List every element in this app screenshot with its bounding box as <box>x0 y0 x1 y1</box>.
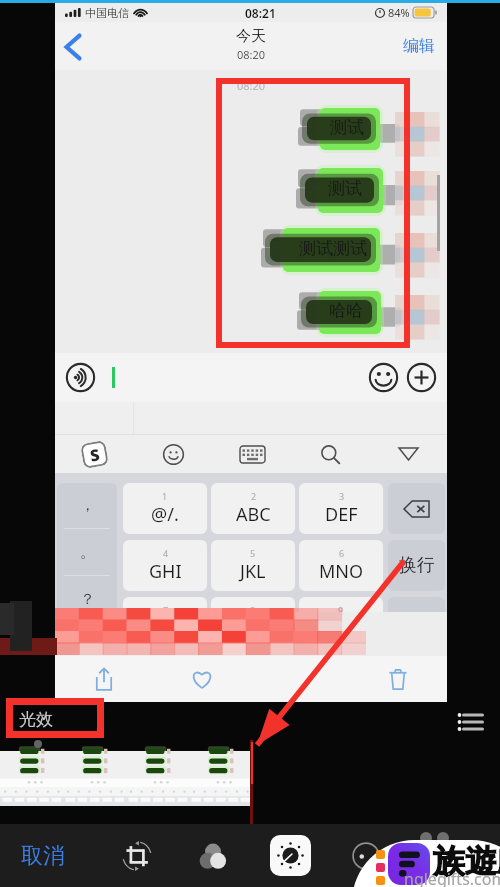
staticText: 2 <box>251 490 257 502</box>
button[interactable]: 3 <box>299 483 383 534</box>
staticText: 84% <box>388 5 410 20</box>
staticText: 族遊戲 <box>433 841 500 881</box>
button[interactable]: 2 <box>211 483 295 534</box>
staticText: WXYZ <box>317 616 365 641</box>
staticText: 测试 <box>328 178 362 199</box>
button[interactable]: Adjust <box>337 824 395 887</box>
staticText: 光效 <box>19 709 53 730</box>
staticText: 6 <box>339 547 345 559</box>
staticText: ABC <box>236 502 271 527</box>
staticText: PQRS <box>142 616 189 641</box>
staticText: DEF <box>325 502 358 527</box>
button[interactable]: 1 <box>123 483 207 534</box>
button[interactable]: 取消 <box>4 824 82 887</box>
button[interactable]: Light effects <box>261 824 319 887</box>
button[interactable]: Filters <box>184 824 242 887</box>
button[interactable]: 7 <box>123 597 207 648</box>
staticText: 1 <box>162 490 168 502</box>
button[interactable]: 换行 <box>388 540 445 591</box>
staticText: 3 <box>339 490 345 502</box>
staticText: 取消 <box>21 842 65 870</box>
staticText: 测试 <box>330 117 364 138</box>
button[interactable]: Backspace <box>388 483 445 534</box>
button[interactable]: ， <box>57 483 117 528</box>
staticText: 测试测试 <box>299 238 367 259</box>
staticText: ， <box>80 496 95 515</box>
button[interactable]: 编辑 <box>403 36 435 56</box>
button[interactable]: Hide keyboard <box>369 435 447 473</box>
button[interactable]: Voice message <box>63 360 97 394</box>
button[interactable]: 6 <box>299 540 383 591</box>
button[interactable]: 8 <box>211 597 295 648</box>
button[interactable]: More <box>404 360 438 394</box>
button[interactable]: List view <box>450 702 490 742</box>
button[interactable]: Delete <box>349 656 447 702</box>
button[interactable]: Favourite <box>153 656 251 702</box>
button[interactable]: Search <box>291 435 369 473</box>
staticText: @/. <box>151 502 179 527</box>
staticText: nglegifts.com <box>404 868 500 887</box>
button[interactable]: 4 <box>123 540 207 591</box>
staticText: 今天 <box>236 27 266 46</box>
staticText: 08:20 <box>237 47 266 62</box>
button[interactable] <box>0 751 252 806</box>
button[interactable]: Emoji <box>366 360 400 394</box>
staticText: 7 <box>163 604 169 616</box>
staticText: 08:20 <box>237 78 266 93</box>
button[interactable]: Emoji <box>134 435 213 473</box>
staticText: 4 <box>163 547 169 559</box>
button[interactable]: 5 <box>211 540 295 591</box>
staticText: 9 <box>338 604 344 616</box>
staticText: 中国电信 <box>85 6 129 20</box>
staticText: 5 <box>250 547 256 559</box>
staticText: TUV <box>236 616 270 641</box>
staticText: 08:21 <box>245 5 276 21</box>
button[interactable] <box>6 698 104 738</box>
staticText: ？ <box>80 590 95 609</box>
staticText: JKL <box>240 559 266 584</box>
staticText: 。 <box>80 543 95 562</box>
staticText: GHI <box>149 559 182 584</box>
button[interactable]: ？ <box>57 576 117 622</box>
button[interactable]: 。 <box>57 529 117 575</box>
button[interactable]: Crop and rotate <box>108 824 166 887</box>
staticText: 换行 <box>399 554 435 577</box>
button[interactable] <box>388 597 445 648</box>
button[interactable]: Share <box>55 656 153 702</box>
staticText: 8 <box>250 604 256 616</box>
button[interactable]: S <box>55 435 134 473</box>
staticText: MNO <box>319 559 364 584</box>
button[interactable]: Keyboard <box>213 435 291 473</box>
staticText: 哈哈 <box>329 300 363 321</box>
staticText: S <box>88 443 102 467</box>
button[interactable]: Back <box>64 34 82 60</box>
button[interactable]: 9 <box>299 597 383 648</box>
